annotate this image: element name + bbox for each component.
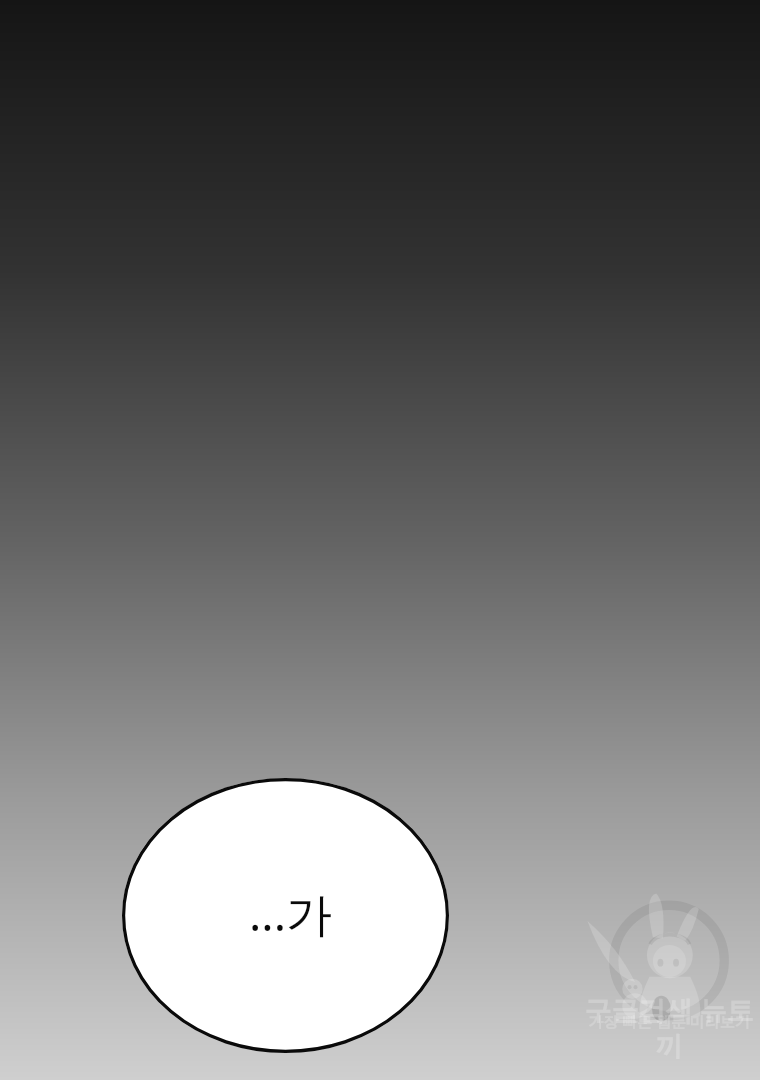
staticText: ...가 [249, 882, 332, 945]
staticText: 구글검색 뉴토끼 [584, 991, 754, 1064]
staticText: 가장 빠른 웹툰 미리보기 [584, 1011, 754, 1031]
button[interactable]: Speech balloon: ...가 [122, 778, 449, 1053]
